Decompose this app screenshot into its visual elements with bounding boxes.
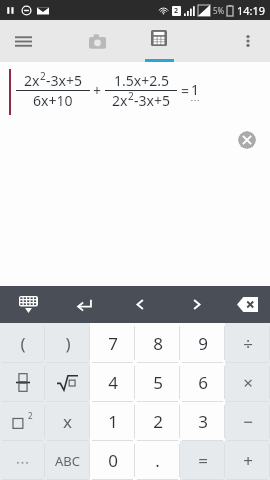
- staticText: 2x: [112, 91, 128, 110]
- staticText: 1: [108, 410, 118, 433]
- staticText: 2: [153, 410, 163, 433]
- staticText: 6x+10: [33, 91, 73, 110]
- staticText: +: [243, 449, 253, 472]
- staticText: (: [20, 332, 26, 355]
- staticText: ABC: [55, 452, 80, 470]
- staticText: 3: [198, 410, 208, 433]
- button[interactable]: More options: [232, 25, 264, 57]
- staticText: =: [198, 449, 208, 472]
- button[interactable]: Square: [0, 402, 45, 441]
- button[interactable]: Menu: [6, 24, 40, 58]
- staticText: ×: [243, 371, 253, 394]
- button[interactable]: Square root: [45, 363, 90, 402]
- staticText: 1: [191, 80, 200, 99]
- button[interactable]: ×: [225, 363, 270, 402]
- staticText: 2: [174, 6, 179, 16]
- button[interactable]: 1: [90, 402, 135, 441]
- button[interactable]: 9: [180, 323, 225, 363]
- button[interactable]: ): [45, 323, 90, 363]
- button[interactable]: Next: [168, 286, 224, 323]
- button[interactable]: 0: [90, 441, 135, 480]
- staticText: .: [155, 449, 160, 472]
- button[interactable]: Enter: [56, 286, 112, 323]
- staticText: +: [93, 81, 102, 100]
- staticText: 7: [108, 332, 118, 355]
- staticText: 5%: [213, 5, 225, 16]
- staticText: 2x: [24, 71, 40, 90]
- staticText: ÷: [243, 332, 253, 355]
- button[interactable]: Fraction: [0, 363, 45, 402]
- button[interactable]: 5: [135, 363, 180, 402]
- button[interactable]: Previous: [112, 286, 168, 323]
- staticText: 4: [108, 371, 118, 394]
- staticText: 1.5x+2.5: [114, 71, 169, 90]
- staticText: 6: [198, 371, 208, 394]
- button[interactable]: 6: [180, 363, 225, 402]
- button[interactable]: (: [0, 323, 45, 363]
- button[interactable]: .: [135, 441, 180, 480]
- button[interactable]: Backspace: [224, 286, 270, 323]
- button[interactable]: ÷: [225, 323, 270, 363]
- staticText: 0: [108, 449, 118, 472]
- staticText: 2: [28, 410, 33, 421]
- staticText: 8: [153, 332, 163, 355]
- staticText: ): [65, 332, 71, 355]
- staticText: 9: [198, 332, 208, 355]
- button[interactable]: =: [180, 441, 225, 480]
- button[interactable]: Calculator: [138, 20, 180, 62]
- staticText: =: [181, 81, 190, 100]
- button[interactable]: 8: [135, 323, 180, 363]
- button[interactable]: 4: [90, 363, 135, 402]
- button[interactable]: x: [45, 402, 90, 441]
- button[interactable]: −: [225, 402, 270, 441]
- button[interactable]: 2: [135, 402, 180, 441]
- staticText: x: [63, 410, 72, 433]
- staticText: -3x+5: [46, 71, 82, 90]
- staticText: 2: [40, 69, 46, 83]
- staticText: 2: [128, 89, 134, 103]
- staticText: 5: [153, 371, 163, 394]
- button[interactable]: +: [225, 441, 270, 480]
- button[interactable]: 7: [90, 323, 135, 363]
- button[interactable]: Hide keyboard: [0, 286, 56, 323]
- staticText: −: [243, 410, 253, 433]
- staticText: 14:19: [237, 3, 266, 18]
- button[interactable]: 3: [180, 402, 225, 441]
- button[interactable]: ABC: [45, 441, 90, 480]
- staticText: -3x+5: [134, 91, 170, 110]
- button[interactable]: Camera: [78, 22, 116, 60]
- button[interactable]: More: [0, 441, 45, 480]
- button[interactable]: Clear: [238, 131, 256, 149]
